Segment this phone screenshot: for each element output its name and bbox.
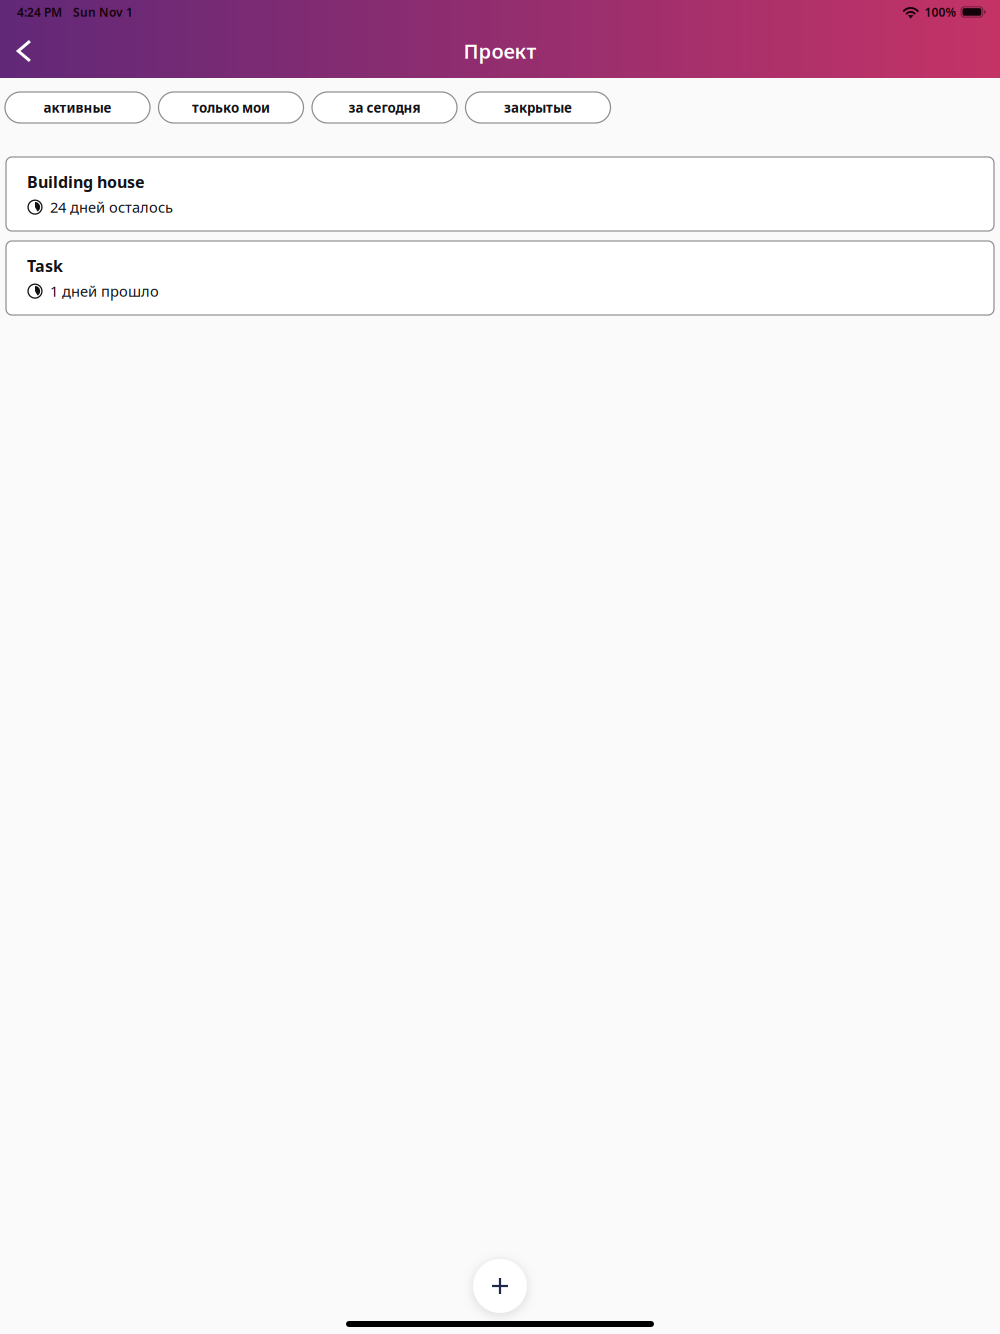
staticText: 100% — [925, 4, 957, 20]
button[interactable]: активные — [5, 92, 150, 123]
button[interactable]: за сегодня — [312, 92, 457, 123]
button[interactable]: Building house — [6, 157, 994, 231]
staticText: Building house — [27, 171, 145, 192]
button[interactable]: Back — [0, 24, 48, 78]
button[interactable]: Add task — [473, 1259, 527, 1313]
button[interactable]: Task — [6, 241, 994, 315]
button[interactable]: закрытые — [465, 92, 610, 123]
staticText: 1 дней прошло — [50, 281, 159, 301]
staticText: 4:24 PM — [17, 4, 62, 20]
staticText: 24 дней осталось — [50, 197, 173, 217]
staticText: Проект — [463, 38, 536, 64]
staticText: Task — [27, 255, 63, 276]
staticText: активные — [43, 99, 111, 116]
button[interactable]: только мои — [158, 92, 303, 123]
staticText: закрытые — [504, 99, 572, 116]
staticText: Sun Nov 1 — [73, 4, 133, 20]
staticText: за сегодня — [348, 99, 420, 116]
staticText: только мои — [192, 99, 270, 116]
